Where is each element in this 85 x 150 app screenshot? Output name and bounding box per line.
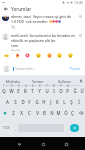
button[interactable]: A [3,96,11,107]
staticText: 1-0 FDD cok sevindim [11,19,48,24]
button[interactable]: 3 [15,86,22,96]
button[interactable]: N [48,107,55,119]
button[interactable]: 2 [8,86,15,96]
staticText: Kullanıcı [58,79,71,83]
button[interactable]: Kullanıcı [51,76,77,85]
button[interactable]: Back [2,5,9,12]
staticText: , [15,126,16,131]
button[interactable]: D [19,96,26,107]
button[interactable]: Shift [0,107,9,119]
staticText: mefLizzeli Sonuclarinizi bu hesabin en c… [11,33,77,38]
button[interactable]: Crown emoji [4,53,9,58]
staticText: I [53,88,55,94]
button[interactable]: Like comment [78,14,83,19]
staticText: 13:46 [74,0,83,5]
staticText: 5 [32,84,34,88]
button[interactable]: Comma [13,124,18,132]
button[interactable]: M [55,107,62,119]
button[interactable]: Emoji [57,53,62,58]
button[interactable]: Ğ [71,86,78,96]
button[interactable]: Fire emoji [15,53,20,58]
staticText: N [50,110,54,116]
button[interactable]: Yorum ekle... [13,66,69,71]
button[interactable]: Ç [69,107,76,119]
button[interactable]: 4 [22,86,29,96]
staticText: L [63,99,66,105]
button[interactable]: 1 [0,86,8,96]
button[interactable]: Emoji [68,53,73,58]
button[interactable]: Z [9,107,17,119]
staticText: Q [2,88,6,94]
staticText: 0 [67,84,69,88]
staticText: 8 [53,84,55,88]
button[interactable]: G [33,96,40,107]
button[interactable]: F [26,96,33,107]
staticText: V [36,110,39,116]
staticText: X [20,110,23,116]
staticText: R [24,88,27,94]
staticText: 4 [25,84,27,88]
staticText: F [28,99,31,105]
button[interactable]: mefLizzeli Sonuclarinizi bu hesabin en c… [0,31,85,51]
staticText: 2g [11,25,15,29]
button[interactable]: S [11,96,19,107]
button[interactable]: B [41,107,48,119]
staticText: D [21,99,25,105]
staticText: Ğ [73,88,77,94]
staticText: A [6,99,9,105]
button[interactable]: K [54,96,61,107]
button[interactable]: Emoji [47,53,52,58]
button[interactable]: Sparkle emoji [25,53,30,58]
staticText: P [66,88,69,94]
staticText: E [17,88,20,94]
staticText: com [11,43,19,48]
button[interactable]: C [25,107,33,119]
staticText: 6 [39,84,41,88]
button[interactable]: 0 [64,86,71,96]
button[interactable]: Backspace [76,107,85,119]
button[interactable]: Ü [78,86,85,96]
button[interactable]: Emoji [36,53,41,58]
button[interactable]: J [47,96,54,107]
staticText: U [45,88,49,94]
button[interactable]: 6 [36,86,43,96]
staticText: Ö [64,110,68,116]
staticText: W [9,88,14,94]
staticText: O [59,88,63,94]
button[interactable]: 7 [43,86,50,96]
button[interactable]: Voice input [77,76,85,85]
staticText: B [43,110,46,116]
button[interactable]: ?123 [0,124,13,132]
button[interactable]: Back [14,139,24,149]
button[interactable]: Period [64,124,70,132]
staticText: ?123 [3,126,10,130]
staticText: 9 [60,84,62,88]
button[interactable]: Like comment [78,33,83,38]
button[interactable]: Home [38,139,48,149]
staticText: G [35,99,39,105]
button[interactable]: V [33,107,41,119]
button[interactable]: Ö [62,107,69,119]
staticText: M [56,110,61,116]
button[interactable]: ahmet_tasci Seyirci maca iyi gitti de bu… [0,12,85,31]
button[interactable]: İ [75,96,82,107]
staticText: ahmet_tasci Seyirci maca iyi gitti de bu… [11,14,77,19]
button[interactable]: H [40,96,47,107]
button[interactable]: Ş [68,96,75,107]
button[interactable]: X [17,107,25,119]
button[interactable]: Send [70,124,79,132]
staticText: Yorumlar [11,6,32,12]
button[interactable]: 8 [50,86,57,96]
button[interactable]: L [61,96,68,107]
staticText [75,84,76,88]
button[interactable]: Paylas [69,66,82,71]
button[interactable]: 5 [29,86,36,96]
button[interactable]: Recents [61,139,71,149]
button[interactable]: 9 [57,86,64,96]
button[interactable]: Tamam [25,76,51,85]
button[interactable]: Merhaba [0,76,25,85]
staticText: Yorum ekle... [15,66,36,71]
staticText: . [67,126,68,131]
